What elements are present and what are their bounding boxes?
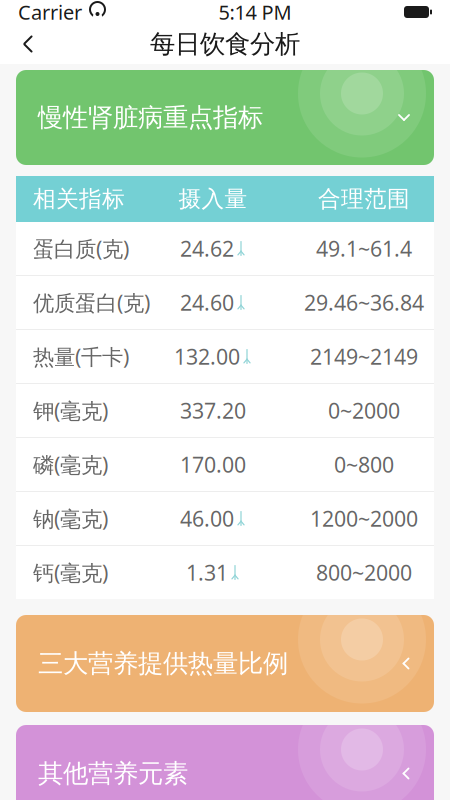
staticText: 其他营养元素 (38, 758, 188, 789)
staticText: 钾(毫克) (33, 396, 108, 425)
staticText: 磷(毫克) (33, 450, 108, 479)
staticText: 慢性肾脏病重点指标 (38, 102, 263, 133)
button[interactable]: 其他营养元素 (0, 725, 450, 800)
staticText: 46.00 (180, 504, 234, 533)
staticText: 2149~2149 (310, 342, 418, 371)
staticText: 蛋白质(克) (33, 234, 129, 263)
staticText: 0~2000 (328, 396, 400, 425)
staticText: 5:14 PM (218, 0, 291, 25)
staticText: 0~800 (334, 450, 394, 479)
staticText: 三大营养提供热量比例 (38, 648, 288, 679)
button[interactable]: Back (6, 24, 50, 64)
staticText: 24.60 (180, 288, 234, 317)
staticText: 1200~2000 (310, 504, 418, 533)
staticText: 29.46~36.84 (304, 288, 424, 317)
staticText: 摄入量 (178, 185, 247, 213)
staticText: 800~2000 (316, 558, 412, 587)
staticText: 钙(毫克) (33, 558, 108, 587)
button[interactable]: 慢性肾脏病重点指标 (0, 70, 450, 165)
staticText: 49.1~61.4 (316, 234, 412, 263)
staticText: 优质蛋白(克) (33, 288, 150, 317)
staticText: 合理范围 (318, 185, 410, 213)
button[interactable]: 三大营养提供热量比例 (0, 615, 450, 712)
staticText: 相关指标 (33, 185, 125, 213)
staticText: 132.00 (174, 342, 240, 371)
staticText: Carrier (18, 0, 82, 25)
staticText: 钠(毫克) (33, 504, 108, 533)
staticText: 热量(千卡) (33, 342, 129, 371)
staticText: 24.62 (180, 234, 234, 263)
staticText: 每日饮食分析 (150, 28, 300, 59)
staticText: 337.20 (180, 396, 246, 425)
staticText: 170.00 (180, 450, 246, 479)
staticText: 1.31 (186, 558, 228, 587)
